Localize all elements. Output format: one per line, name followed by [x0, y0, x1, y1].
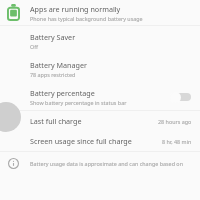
- button[interactable]: Battery percentage: [0, 83, 200, 110]
- staticText: Battery usage data is approximate and ca…: [30, 160, 192, 167]
- staticText: Battery percentage: [30, 88, 95, 98]
- staticText: 78 apps restricted: [30, 71, 76, 78]
- staticText: Apps are running normally: [30, 4, 121, 14]
- other: Information: [8, 158, 19, 169]
- button[interactable]: Screen usage since full charge: [0, 131, 200, 151]
- staticText: Screen usage since full charge: [30, 136, 132, 146]
- staticText: Battery Manager: [30, 60, 87, 70]
- staticText: Phone has typical background battery usa…: [30, 15, 143, 22]
- staticText: Battery Saver: [30, 32, 76, 42]
- staticText: Off: [30, 43, 38, 50]
- other: Battery status: [7, 4, 20, 21]
- button[interactable]: Battery Manager: [0, 55, 200, 83]
- staticText: 8 hr, 48 min: [162, 138, 192, 145]
- staticText: Show battery percentage in status bar: [30, 99, 127, 106]
- staticText: Last full charge: [30, 116, 82, 126]
- button[interactable]: Last full charge: [0, 111, 200, 131]
- button[interactable]: Battery Saver: [0, 26, 200, 55]
- button[interactable]: Battery status: [0, 0, 200, 25]
- staticText: 28 hours ago: [158, 118, 192, 125]
- button[interactable]: Battery percentage toggle, off: [170, 91, 192, 103]
